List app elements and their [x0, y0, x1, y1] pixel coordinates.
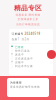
staticText: 全场满减折上折: [17, 17, 38, 21]
staticText: 包裹1: [11, 37, 19, 41]
staticText: 快件已送达: [15, 49, 30, 53]
staticText: 已签收: [15, 45, 24, 49]
staticText: 正在派送途中: [15, 57, 33, 60]
staticText: 更多优惠好物等你来挑: [10, 85, 40, 89]
staticText: 共2件: [21, 37, 29, 41]
staticText: 到达本市分拨: [15, 64, 33, 68]
staticText: 优惠多多 限时抢购: [15, 13, 40, 16]
staticText: 派送中: [15, 53, 24, 56]
staticText: 运输中: [15, 61, 24, 64]
staticText: 订单编号 20240518: [11, 32, 40, 35]
staticText: 精品专区: [14, 4, 42, 12]
staticText: 为你推荐: [10, 81, 22, 84]
staticText: 当前订单物流信息: [16, 23, 40, 26]
